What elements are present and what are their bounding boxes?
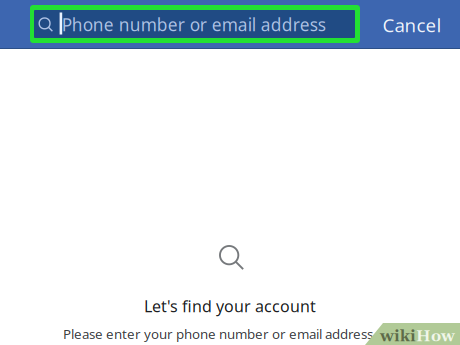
staticText: Cancel <box>382 13 441 37</box>
button[interactable]: Cancel <box>380 10 444 40</box>
staticText: How <box>416 326 455 345</box>
staticText: wiki <box>380 326 416 345</box>
staticText: Phone number or email address <box>62 13 326 36</box>
button[interactable]: Phone number or email address <box>30 5 360 43</box>
staticText: Let's find your account <box>144 295 316 317</box>
staticText: Please enter your phone number or email … <box>63 325 389 345</box>
